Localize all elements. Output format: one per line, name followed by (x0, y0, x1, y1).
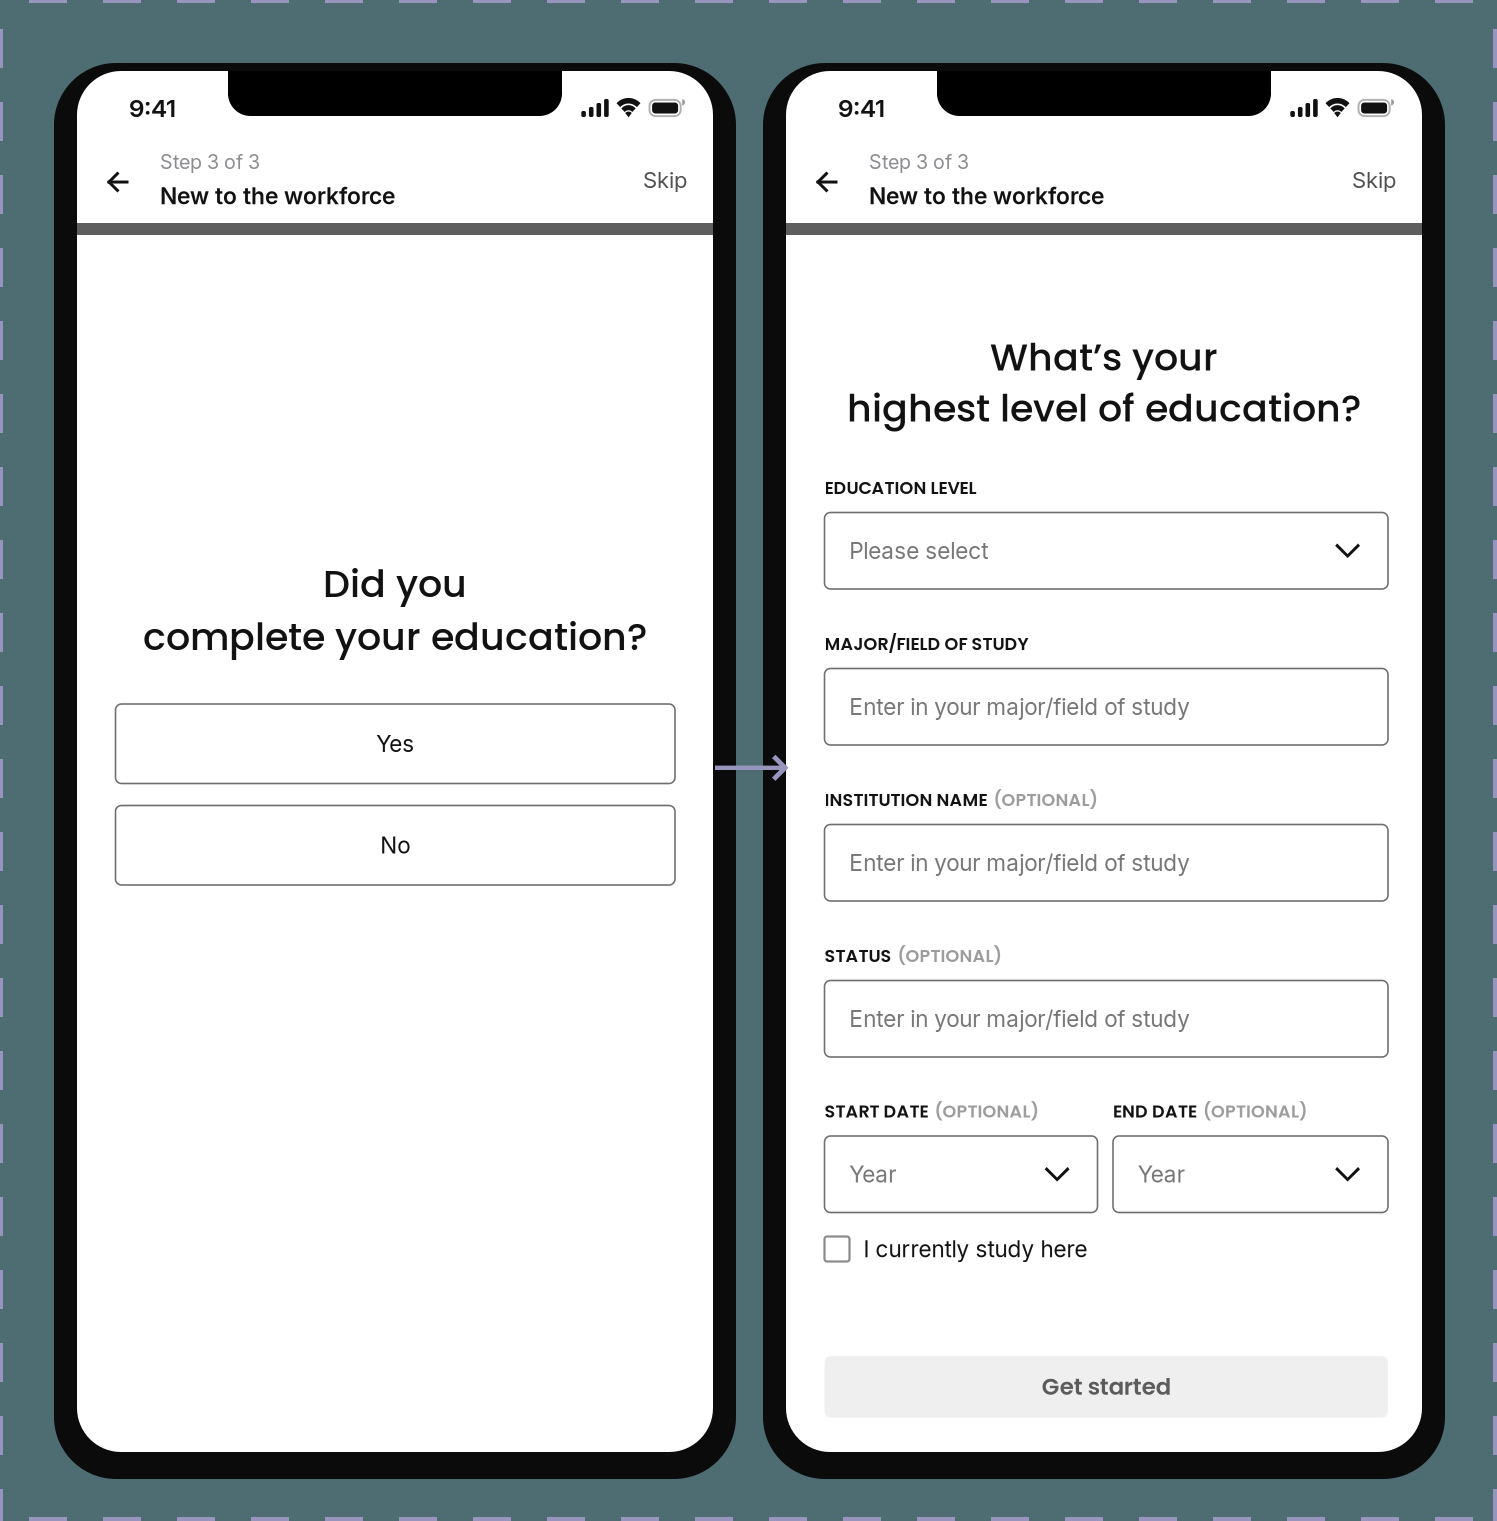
button[interactable]: Please select (824, 512, 1388, 589)
staticText: MAJOR/FIELD OF STUDY (824, 632, 1028, 656)
staticText: EDUCATION LEVEL (824, 476, 976, 500)
staticText: complete your education? (143, 610, 647, 663)
staticText: Enter in your major/field of study (849, 1005, 1190, 1032)
button[interactable]: Year (1113, 1136, 1388, 1212)
button[interactable]: No (115, 805, 675, 885)
staticText: (OPTIONAL) (993, 788, 1097, 812)
button[interactable]: Enter in your major/field of study (824, 980, 1388, 1057)
staticText: 9:41 (129, 93, 176, 123)
staticText: (OPTIONAL) (934, 1099, 1038, 1124)
staticText: INSTITUTION NAME (824, 788, 987, 812)
button[interactable]: Yes (115, 704, 675, 783)
staticText: Step 3 of 3 (869, 150, 969, 174)
staticText: What’s your (990, 330, 1218, 384)
staticText: Did you (323, 557, 467, 610)
staticText: 9:41 (838, 93, 885, 123)
staticText: Yes (376, 730, 414, 757)
staticText: Enter in your major/field of study (849, 849, 1190, 876)
staticText: Step 3 of 3 (160, 150, 260, 174)
button[interactable]: Skip (1329, 152, 1419, 208)
staticText: STATUS (824, 944, 891, 968)
button[interactable]: Enter in your major/field of study (824, 824, 1388, 901)
staticText: Skip (1352, 167, 1396, 193)
staticText: START DATE (824, 1099, 928, 1124)
staticText: New to the workforce (160, 182, 395, 210)
staticText: Skip (643, 167, 687, 193)
button[interactable]: Enter in your major/field of study (824, 668, 1388, 745)
button[interactable]: Back (799, 154, 855, 210)
button[interactable]: Year (824, 1136, 1097, 1212)
staticText: Get started (1042, 1371, 1171, 1403)
staticText: highest level of education? (847, 381, 1361, 435)
button[interactable]: Back (90, 154, 146, 210)
staticText: Year (849, 1160, 896, 1188)
staticText: No (380, 831, 410, 859)
button[interactable]: I currently study here (824, 1236, 1388, 1262)
staticText: Please select (849, 537, 988, 564)
staticText: I currently study here (863, 1235, 1087, 1263)
button[interactable]: Get started (824, 1356, 1388, 1418)
button[interactable]: Skip (620, 152, 710, 208)
staticText: Enter in your major/field of study (849, 693, 1190, 720)
staticText: (OPTIONAL) (1203, 1099, 1307, 1124)
staticText: Year (1138, 1160, 1185, 1188)
staticText: END DATE (1113, 1099, 1197, 1124)
staticText: (OPTIONAL) (897, 944, 1001, 968)
staticText: New to the workforce (869, 182, 1104, 210)
